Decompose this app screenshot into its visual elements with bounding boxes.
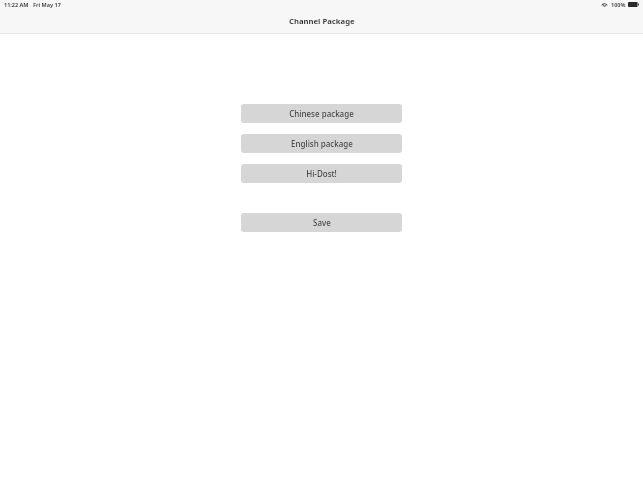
staticText: 11:22 AM bbox=[4, 1, 29, 8]
staticText: Fri May 17 bbox=[33, 1, 61, 8]
staticText: English package bbox=[291, 138, 353, 149]
other: Wi-Fi connected bbox=[601, 2, 608, 7]
button[interactable]: Save bbox=[241, 213, 402, 232]
staticText: Save bbox=[313, 217, 331, 228]
staticText: Channel Package bbox=[289, 16, 355, 26]
button[interactable]: Hi-Dost! bbox=[241, 164, 402, 183]
other: Battery full bbox=[628, 2, 639, 7]
button[interactable]: English package bbox=[241, 134, 402, 153]
staticText: Chinese package bbox=[289, 108, 354, 119]
staticText: Hi-Dost! bbox=[306, 168, 337, 179]
staticText: 100% bbox=[611, 1, 626, 8]
button[interactable]: Chinese package bbox=[241, 104, 402, 123]
